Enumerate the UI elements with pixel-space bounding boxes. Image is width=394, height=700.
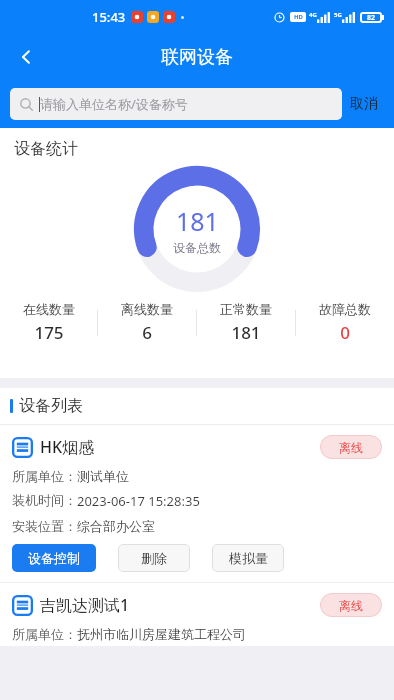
staticText: 离线 [339,598,363,613]
staticText: 故障总数 [319,301,371,317]
button[interactable]: Back [6,37,46,77]
button[interactable]: 删除 [118,544,190,572]
staticText: 抚州市临川房屋建筑工程公司 [77,626,246,642]
staticText: 综合部办公室 [77,518,155,534]
staticText: 0 [340,321,350,344]
staticText: 设备控制 [28,550,80,566]
staticText: 安装位置： [12,518,77,534]
button[interactable]: HK烟感 [0,425,394,582]
staticText: HD [294,13,303,21]
staticText: 6 [142,321,152,344]
staticText: 取消 [350,95,378,113]
staticText: 4G [309,11,317,19]
staticText: 离线 [339,440,363,455]
staticText: 所属单位： [12,468,77,484]
button[interactable]: 在线数量 [0,301,97,344]
staticText: 5G [334,11,342,19]
staticText: HK烟感 [40,436,95,458]
button[interactable]: 离线 [320,593,382,617]
button[interactable]: 取消 [342,89,386,119]
staticText: 请输入单位名称/设备称号 [40,95,188,113]
staticText: 175 [34,321,64,344]
button[interactable]: 离线 [320,435,382,459]
staticText: 模拟量 [229,550,268,566]
staticText: 2023-06-17 15:28:35 [77,492,200,510]
staticText: 吉凯达测试1 [40,594,130,616]
button[interactable]: 故障总数 [296,301,394,344]
staticText: 设备列表 [19,396,83,416]
staticText: 15:43 [92,8,126,26]
staticText: 181 [176,204,219,238]
button[interactable]: 正常数量 [197,301,295,344]
staticText: 离线数量 [121,301,173,317]
staticText: 在线数量 [23,301,75,317]
staticText: 181 [231,321,261,344]
staticText: 测试单位 [77,468,129,484]
button[interactable]: 吉凯达测试1 [0,583,394,646]
button[interactable]: 设备控制 [12,544,96,572]
staticText: 设备总数 [173,240,221,255]
staticText: 装机时间： [12,492,77,508]
staticText: 82 [367,13,376,23]
button[interactable]: 离线数量 [98,301,196,344]
button[interactable]: 请输入单位名称/设备称号 [10,88,342,120]
button[interactable]: 模拟量 [212,544,284,572]
staticText: 所属单位： [12,626,77,642]
staticText: 联网设备 [161,46,233,69]
staticText: 设备统计 [14,139,78,159]
staticText: 删除 [141,550,167,566]
staticText: 正常数量 [220,301,272,317]
